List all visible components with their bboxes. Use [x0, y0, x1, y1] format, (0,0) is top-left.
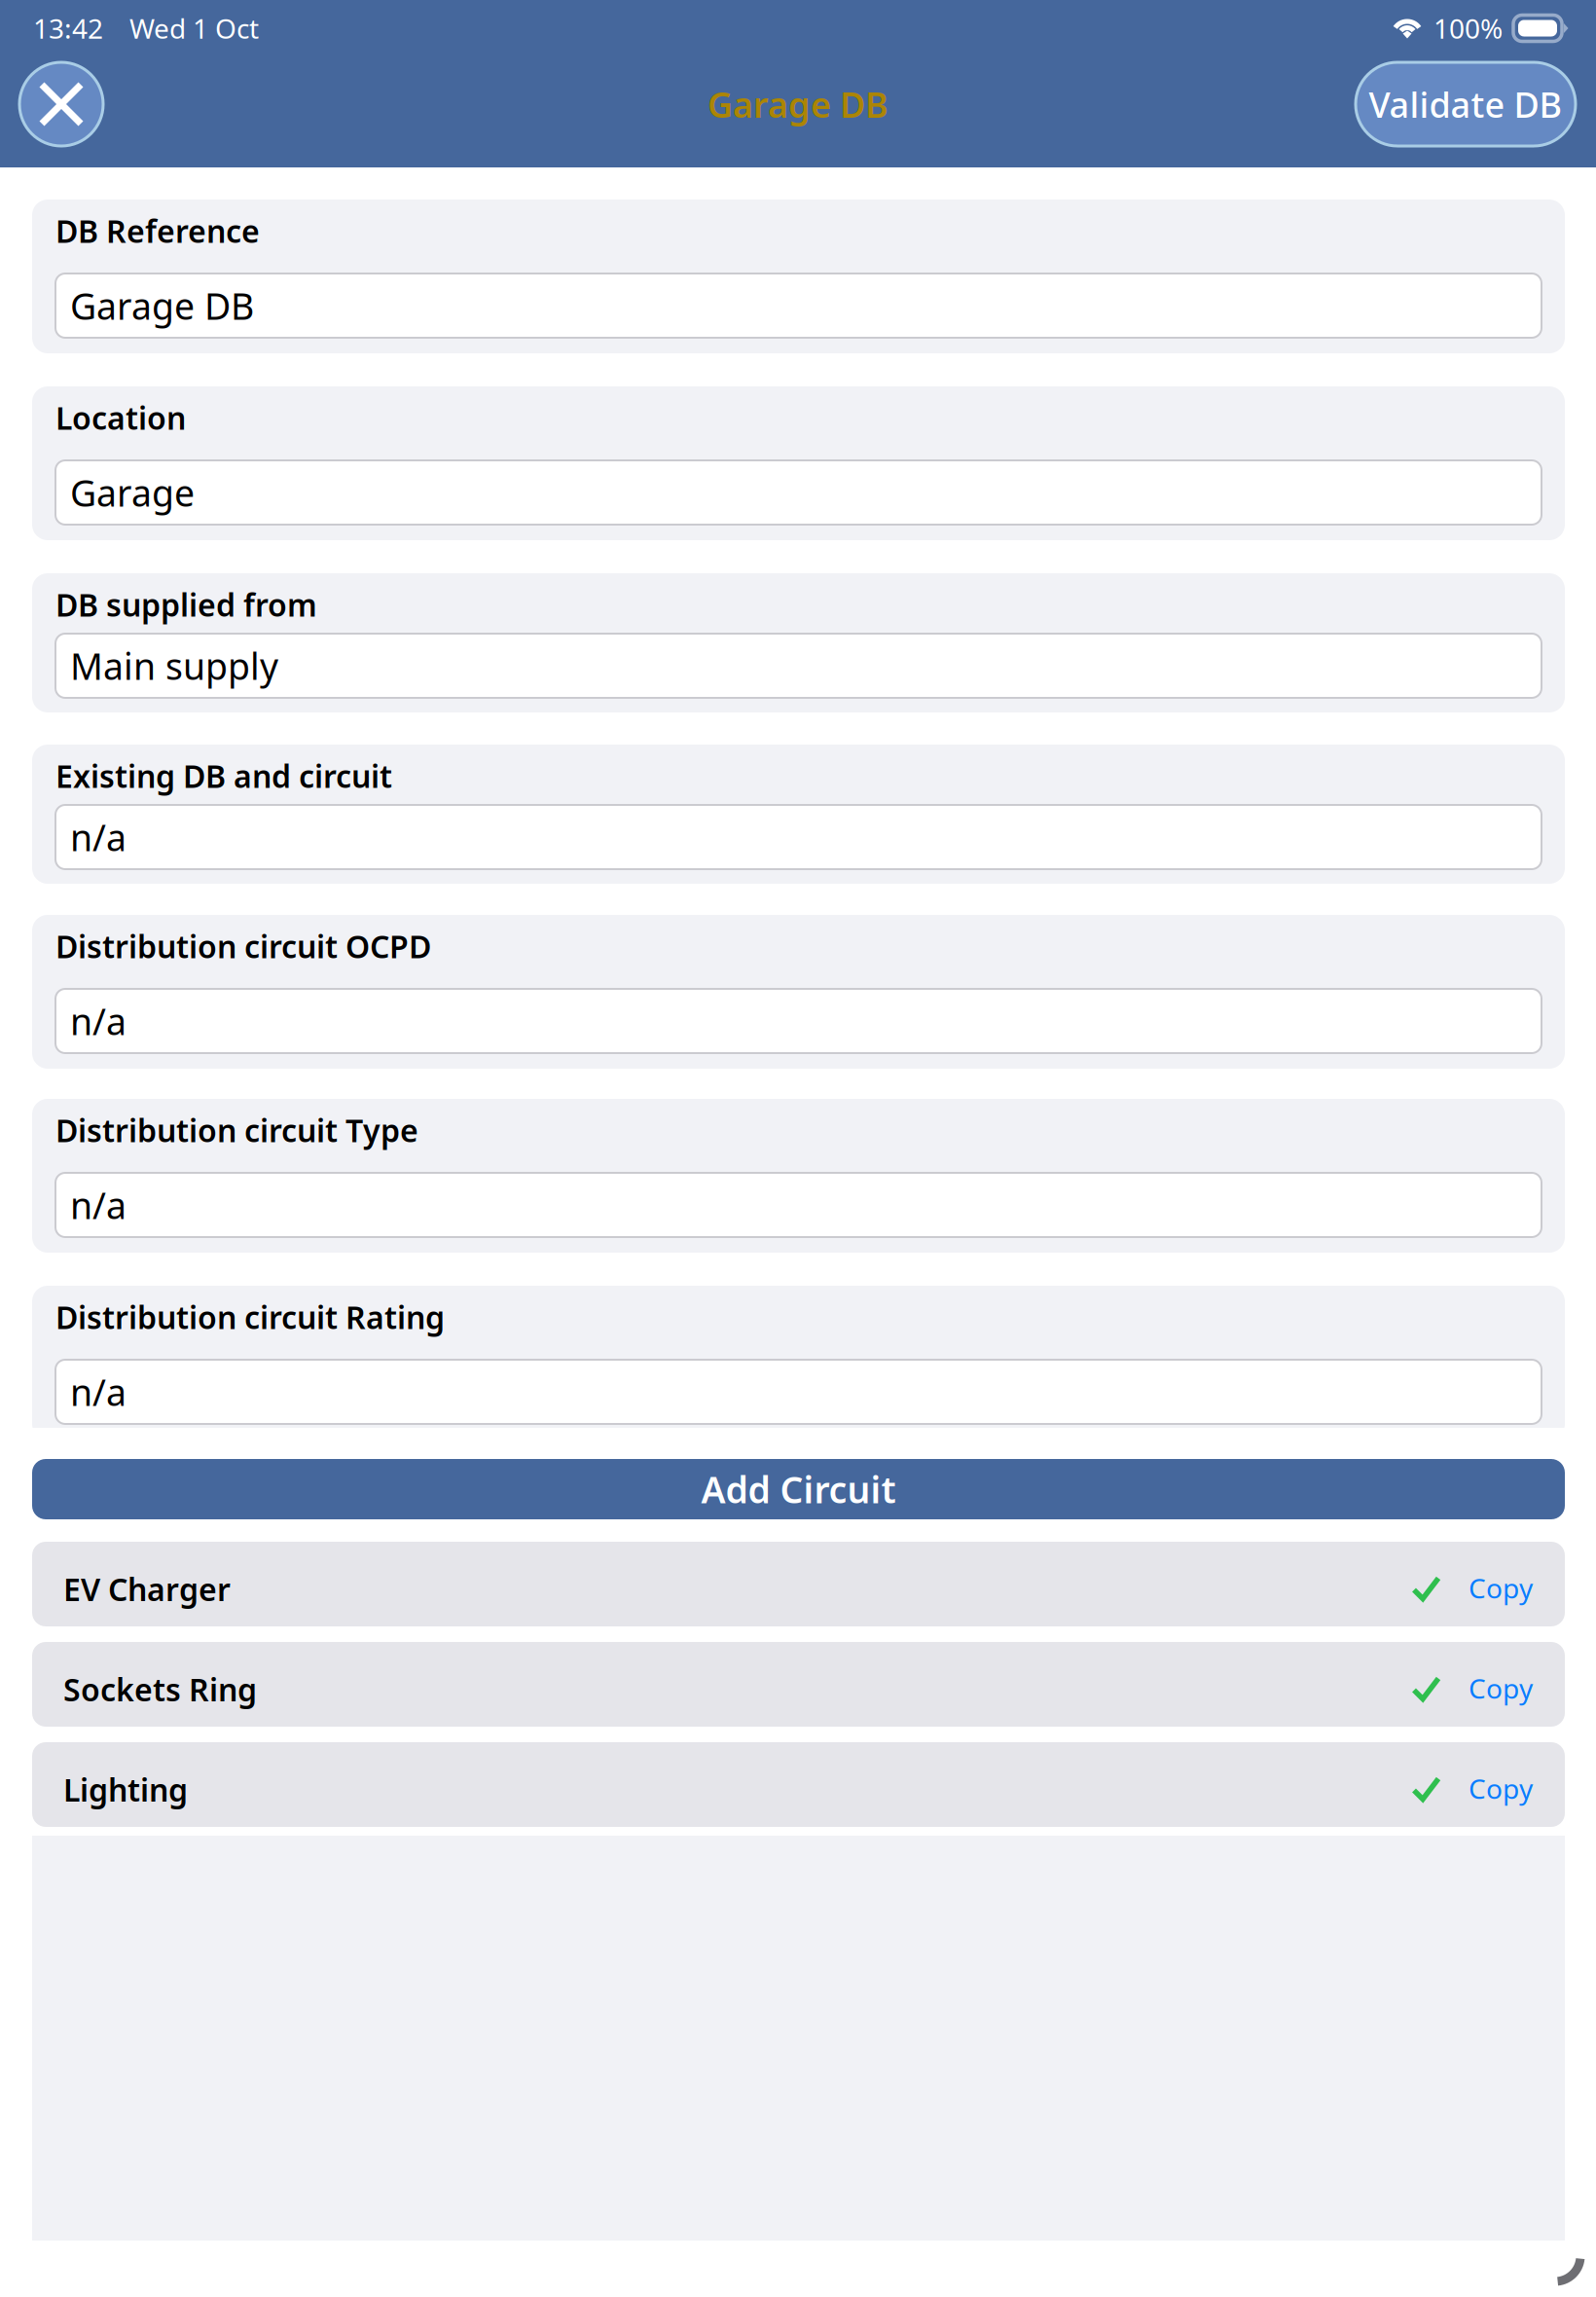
staticText: Validate DB — [1369, 81, 1562, 127]
staticText: Distribution circuit OCPD — [55, 925, 431, 967]
staticText: n/a — [70, 813, 127, 861]
button[interactable]: n/a — [55, 1360, 1542, 1424]
button[interactable]: Garage — [55, 460, 1542, 525]
staticText: Existing DB and circuit — [55, 755, 392, 796]
staticText: n/a — [70, 1181, 127, 1229]
staticText: 13:42 — [33, 10, 103, 46]
button[interactable]: Lighting — [32, 1742, 1390, 1827]
button[interactable]: Main supply — [55, 634, 1542, 698]
staticText: Wed 1 Oct — [129, 10, 259, 46]
staticText: 100% — [1433, 10, 1503, 46]
button[interactable]: Add Circuit — [32, 1459, 1565, 1519]
button[interactable]: n/a — [55, 1173, 1542, 1237]
staticText: EV Charger — [63, 1568, 231, 1610]
staticText: n/a — [70, 997, 127, 1045]
staticText: Copy — [1469, 1770, 1533, 1807]
staticText: Lighting — [63, 1769, 188, 1810]
staticText: Copy — [1469, 1670, 1533, 1706]
staticText: Copy — [1469, 1570, 1533, 1606]
staticText: Distribution circuit Type — [55, 1109, 418, 1151]
button[interactable]: Garage DB — [55, 273, 1542, 338]
button[interactable]: Copy — [1390, 1742, 1565, 1827]
button[interactable]: n/a — [55, 989, 1542, 1053]
button[interactable]: Close — [19, 62, 103, 146]
button[interactable]: n/a — [55, 805, 1542, 869]
button[interactable]: Validate DB — [1356, 62, 1576, 146]
staticText: Main supply — [70, 642, 278, 690]
staticText: DB Reference — [55, 210, 260, 251]
staticText: Garage DB — [70, 281, 254, 330]
staticText: Sockets Ring — [63, 1669, 257, 1710]
staticText: DB supplied from — [55, 584, 317, 625]
staticText: Distribution circuit Rating — [55, 1296, 445, 1338]
staticText: Garage DB — [707, 81, 889, 127]
staticText: Garage — [70, 468, 195, 517]
button[interactable]: EV Charger — [32, 1542, 1390, 1626]
button[interactable]: Copy — [1390, 1542, 1565, 1626]
staticText: Location — [55, 397, 186, 438]
staticText: Add Circuit — [701, 1465, 896, 1513]
staticText: n/a — [70, 1368, 127, 1416]
button[interactable]: Sockets Ring — [32, 1642, 1390, 1727]
button[interactable]: Copy — [1390, 1642, 1565, 1727]
